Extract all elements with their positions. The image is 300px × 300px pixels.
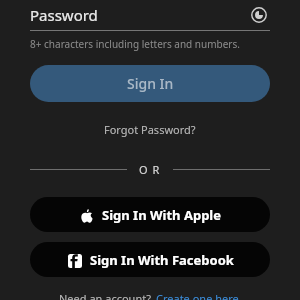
button[interactable]: Forgot Password? — [98, 119, 202, 140]
staticText: Password — [30, 5, 98, 25]
staticText: Need an account? — [59, 291, 151, 300]
staticText: Create one here. — [156, 291, 242, 300]
staticText: Forgot Password? — [104, 122, 196, 137]
staticText: Sign In With Facebook — [90, 251, 234, 269]
button[interactable]: Sign In — [30, 65, 270, 102]
staticText: Sign In — [127, 74, 174, 93]
staticText: 8+ characters including letters and numb… — [30, 37, 240, 51]
button[interactable]: Show password — [248, 4, 270, 26]
staticText: Sign In With Apple — [102, 206, 221, 224]
staticText: O R — [139, 162, 161, 177]
button[interactable]: Create one here. — [156, 291, 242, 300]
button[interactable]: Sign In With Apple — [30, 197, 270, 232]
button[interactable]: Sign In With Facebook — [30, 242, 270, 277]
